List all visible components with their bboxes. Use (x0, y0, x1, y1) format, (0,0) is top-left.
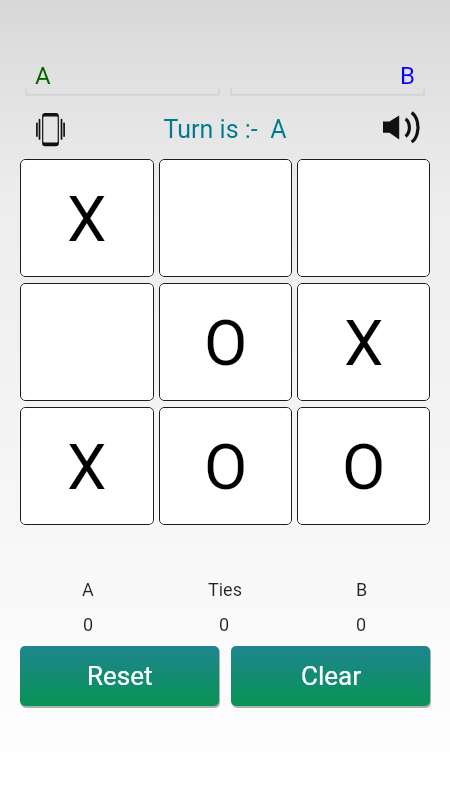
staticText: X (67, 431, 107, 505)
button[interactable]: Sound (378, 107, 422, 151)
button[interactable]: X (297, 283, 430, 401)
staticText: B (356, 579, 368, 600)
button[interactable]: Clear (231, 646, 430, 706)
staticText: Clear (301, 661, 361, 691)
staticText: Turn is :- A (72, 115, 378, 144)
staticText: X (344, 307, 384, 381)
staticText: 0 (356, 614, 367, 635)
button[interactable]: O (159, 407, 292, 525)
button[interactable]: O (297, 407, 430, 525)
staticText: O (204, 431, 248, 505)
staticText: Reset (87, 661, 153, 691)
staticText: A (82, 579, 94, 600)
button[interactable]: O (159, 283, 292, 401)
button[interactable]: Empty cell (159, 159, 292, 277)
staticText: Ties (208, 579, 242, 600)
button[interactable]: A (25, 62, 220, 96)
button[interactable]: X (20, 407, 154, 525)
button[interactable]: B (230, 62, 425, 96)
button[interactable]: Empty cell (297, 159, 430, 277)
button[interactable]: Reset (20, 646, 219, 706)
staticText: A (35, 62, 210, 90)
button[interactable]: Vibrate (28, 107, 72, 151)
staticText: O (342, 431, 386, 505)
staticText: 0 (83, 614, 94, 635)
staticText: O (204, 307, 248, 381)
button[interactable]: Empty cell (20, 283, 154, 401)
staticText: B (240, 62, 415, 90)
staticText: X (67, 183, 107, 257)
staticText: 0 (219, 614, 230, 635)
button[interactable]: X (20, 159, 154, 277)
